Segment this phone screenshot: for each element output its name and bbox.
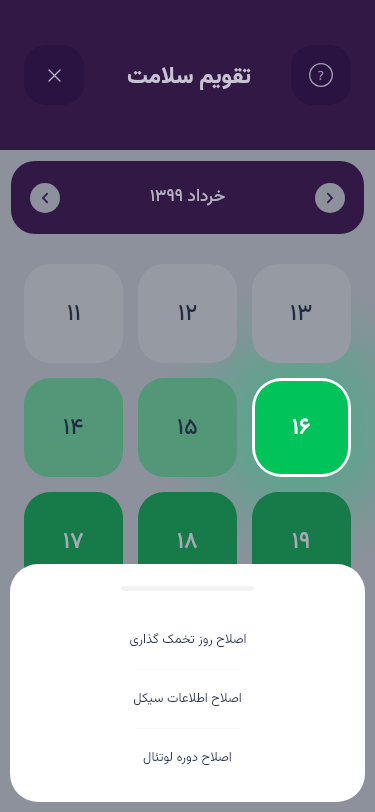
staticText: ۱۴	[63, 410, 84, 446]
button[interactable]: ۱۱	[24, 264, 123, 363]
button[interactable]: Previous month	[30, 183, 60, 213]
button[interactable]: ۱۶	[255, 381, 348, 474]
button[interactable]: ۱۳	[252, 264, 351, 363]
button[interactable]: اصلاح دوره لوتئال	[10, 729, 365, 787]
staticText: اصلاح دوره لوتئال	[143, 748, 232, 768]
staticText: خرداد ۱۳۹۹	[150, 184, 226, 211]
staticText: ۱۸	[177, 524, 198, 560]
button[interactable]: اصلاح روز تخمک گذاری	[10, 611, 365, 669]
staticText: ۱۶	[292, 410, 311, 446]
button[interactable]: ۱۹	[252, 492, 351, 591]
button[interactable]: ۱۵	[138, 378, 237, 477]
button[interactable]: اصلاح اطلاعات سیکل	[10, 670, 365, 728]
staticText: ۱۱	[67, 296, 81, 332]
staticText: ۱۵	[177, 410, 198, 446]
staticText: ?	[318, 66, 324, 84]
staticText: ۱۳	[290, 296, 313, 332]
button[interactable]: ۱۸	[138, 492, 237, 591]
staticText: ۱۹	[292, 524, 311, 560]
button[interactable]: Help	[291, 45, 351, 105]
button[interactable]: Close	[24, 45, 84, 105]
button[interactable]: ۱۴	[24, 378, 123, 477]
staticText: ۱۷	[63, 524, 84, 560]
button[interactable]: Next month	[315, 183, 345, 213]
staticText: ۱۲	[178, 296, 198, 332]
button[interactable]: ۱۷	[24, 492, 123, 591]
staticText: اصلاح روز تخمک گذاری	[129, 630, 247, 650]
staticText: اصلاح اطلاعات سیکل	[133, 689, 242, 709]
button[interactable]: ۱۲	[138, 264, 237, 363]
staticText: تقویم سلامت	[127, 59, 252, 95]
